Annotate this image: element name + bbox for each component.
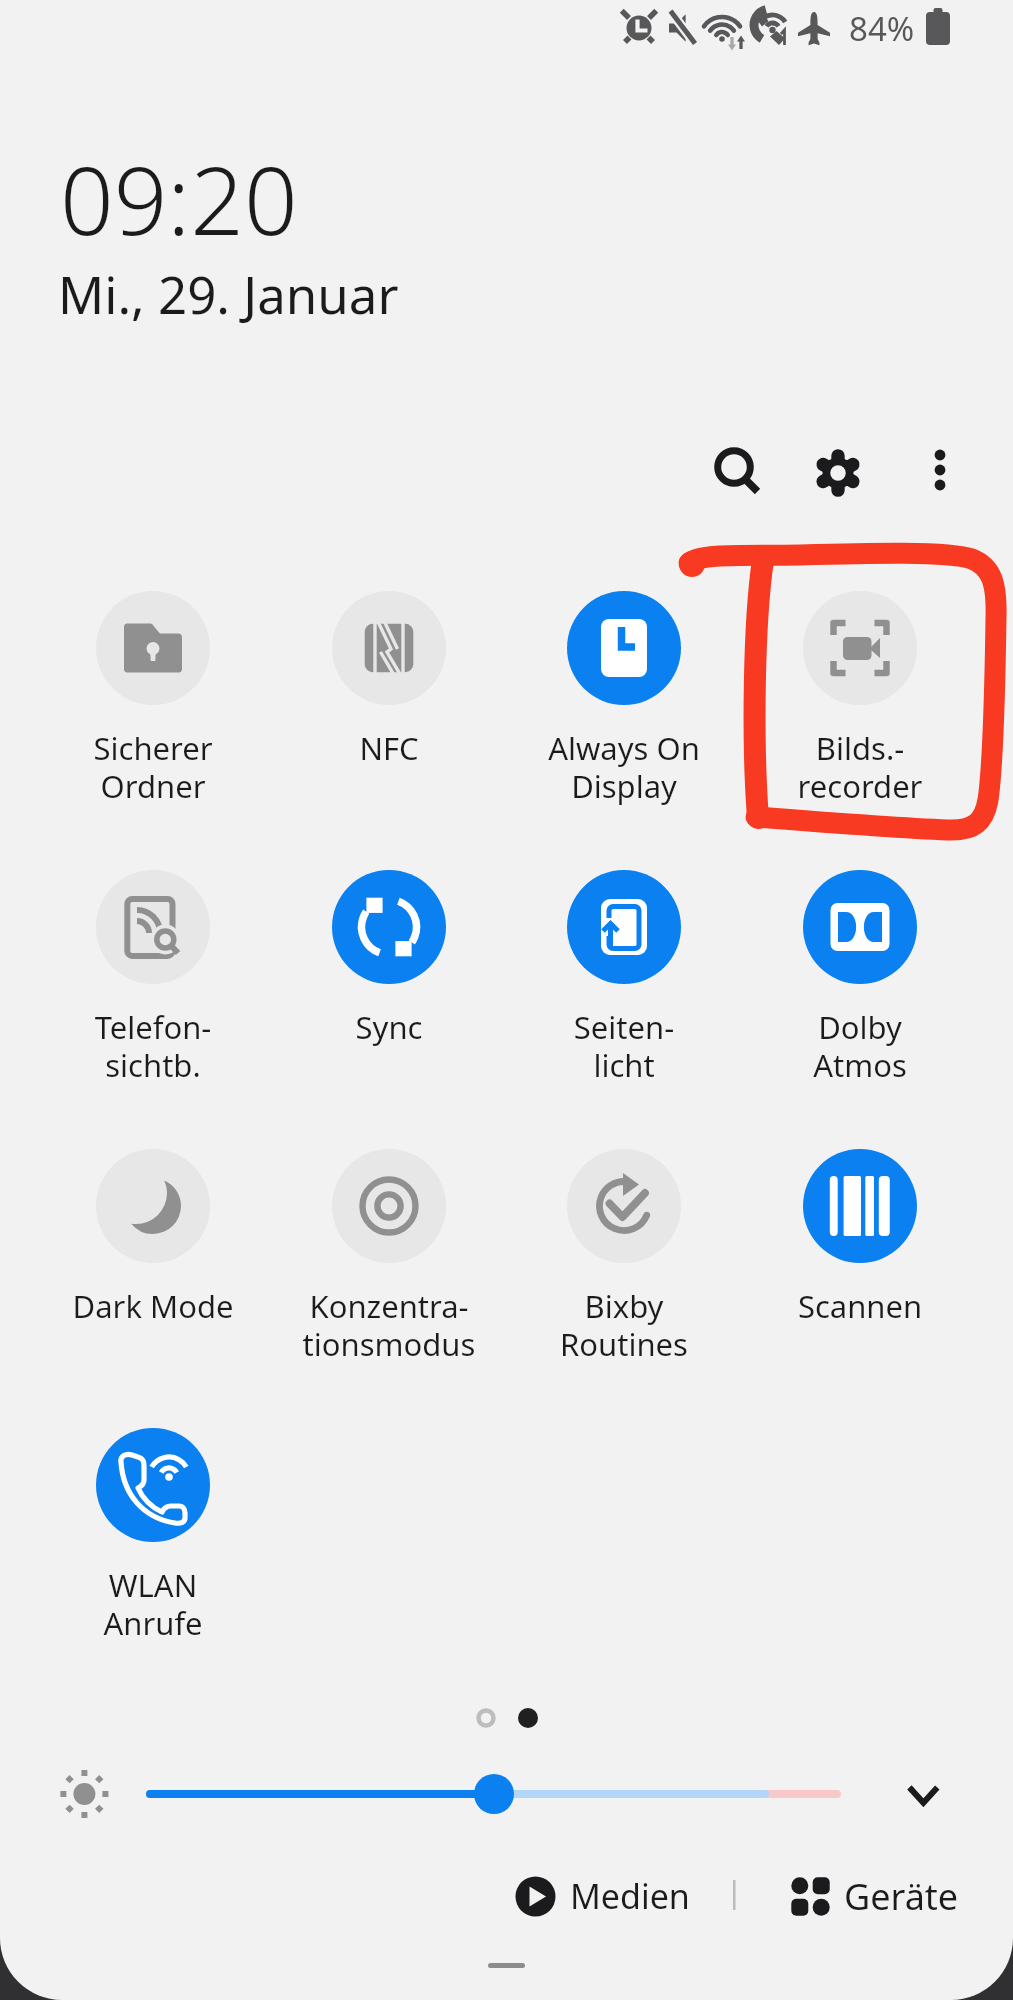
button[interactable]: Bixby Routines	[516, 1149, 732, 1365]
button[interactable]: Always On Display	[516, 591, 732, 807]
button[interactable]: Bilds.- recorder	[752, 591, 968, 807]
button[interactable]: Medien	[512, 1866, 690, 1926]
staticText: WLAN Anrufe	[45, 1564, 261, 1644]
staticText: 09:20	[60, 135, 298, 263]
staticText: Geräte	[844, 1872, 959, 1921]
staticText: Scannen	[752, 1285, 968, 1327]
staticText: Bilds.- recorder	[752, 727, 968, 807]
staticText: NFC	[281, 727, 497, 769]
staticText: Medien	[570, 1873, 690, 1919]
button[interactable]: Sync	[281, 870, 497, 1048]
button[interactable]: Search	[693, 427, 785, 519]
button[interactable]: Dark Mode	[45, 1149, 261, 1327]
button[interactable]: More options	[895, 427, 987, 519]
staticText: Dolby Atmos	[752, 1006, 968, 1086]
staticText: Telefon- sichtb.	[45, 1006, 261, 1086]
button[interactable]: Geräte	[787, 1866, 959, 1926]
button[interactable]: NFC	[281, 591, 497, 769]
button[interactable]: Scannen	[752, 1149, 968, 1327]
button[interactable]: WLAN Anrufe	[45, 1428, 261, 1644]
button[interactable]: Settings	[792, 427, 884, 519]
staticText: Konzentra- tionsmodus	[281, 1285, 497, 1365]
staticText: Bixby Routines	[516, 1285, 732, 1365]
button[interactable]: Expand quick settings	[880, 1756, 965, 1841]
staticText: 84%	[849, 6, 915, 51]
button[interactable]: Sicherer Ordner	[45, 591, 261, 807]
staticText: Sicherer Ordner	[45, 727, 261, 807]
staticText: Always On Display	[516, 727, 732, 807]
staticText: Seiten- licht	[516, 1006, 732, 1086]
button[interactable]: Seiten- licht	[516, 870, 732, 1086]
button[interactable]: Dolby Atmos	[752, 870, 968, 1086]
staticText: Dark Mode	[45, 1285, 261, 1327]
staticText: Mi., 29. Januar	[58, 259, 399, 328]
button[interactable]: Konzentra- tionsmodus	[281, 1149, 497, 1365]
button[interactable]: Telefon- sichtb.	[45, 870, 261, 1086]
staticText: Sync	[281, 1006, 497, 1048]
